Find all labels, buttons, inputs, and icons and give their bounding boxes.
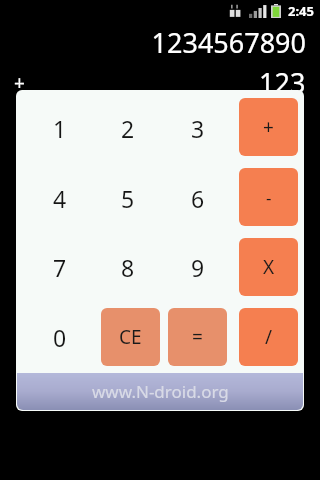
staticText: 7 bbox=[53, 252, 67, 283]
staticText: 0 bbox=[53, 322, 67, 353]
staticText: 5 bbox=[121, 183, 135, 214]
button[interactable]: + bbox=[239, 98, 298, 156]
staticText: 8 bbox=[121, 252, 135, 283]
staticText: www.N-droid.org bbox=[92, 380, 229, 403]
staticText: 9 bbox=[191, 252, 205, 283]
button[interactable]: X bbox=[239, 238, 298, 296]
button[interactable]: www.N-droid.org bbox=[17, 373, 303, 410]
button[interactable]: 4 bbox=[32, 174, 88, 222]
staticText: 2:45 bbox=[288, 2, 314, 20]
staticText: - bbox=[266, 186, 272, 209]
staticText: X bbox=[263, 254, 275, 280]
staticText: 1234567890 bbox=[0, 24, 306, 61]
button[interactable]: / bbox=[239, 308, 298, 366]
button[interactable]: 5 bbox=[100, 174, 156, 222]
staticText: CE bbox=[119, 324, 142, 350]
button[interactable]: - bbox=[239, 168, 298, 226]
staticText: / bbox=[265, 324, 273, 350]
staticText: 4 bbox=[53, 183, 67, 214]
button[interactable]: 0 bbox=[32, 313, 88, 361]
button[interactable]: = bbox=[168, 308, 227, 366]
staticText: + bbox=[14, 70, 25, 96]
staticText: = bbox=[192, 324, 203, 350]
staticText: 1 bbox=[53, 113, 67, 144]
staticText: 6 bbox=[191, 183, 205, 214]
staticText: 123 bbox=[259, 64, 306, 101]
button[interactable]: 7 bbox=[32, 243, 88, 291]
button[interactable]: CE bbox=[101, 308, 160, 366]
button[interactable]: 2 bbox=[100, 104, 156, 152]
button[interactable]: 8 bbox=[100, 243, 156, 291]
staticText: + bbox=[263, 114, 274, 140]
button[interactable]: 9 bbox=[170, 243, 226, 291]
button[interactable]: 1 bbox=[32, 104, 88, 152]
staticText: 3 bbox=[191, 113, 205, 144]
button[interactable]: 6 bbox=[170, 174, 226, 222]
staticText: 2 bbox=[121, 113, 135, 144]
button[interactable]: 3 bbox=[170, 104, 226, 152]
